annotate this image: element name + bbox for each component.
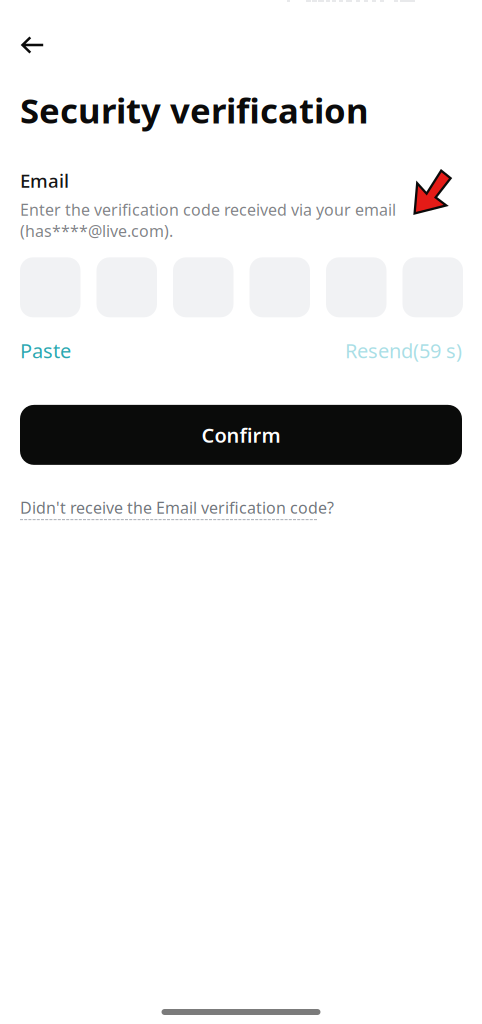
staticText: Enter the verification code received via… [20,199,396,241]
button[interactable]: Confirm [20,405,462,465]
staticText: Paste [20,337,71,364]
staticText: Resend(59 s) [345,337,462,364]
staticText: Confirm [201,422,280,448]
staticText: Email [20,168,69,193]
staticText: Didn't receive the Email verification co… [20,497,334,518]
staticText: Security verification [20,87,369,133]
button[interactable]: Didn't receive the Email verification co… [20,497,334,520]
button[interactable]: Paste [20,337,71,364]
button[interactable]: Resend(59 s) [345,337,462,364]
button[interactable]: Back [0,0,69,65]
